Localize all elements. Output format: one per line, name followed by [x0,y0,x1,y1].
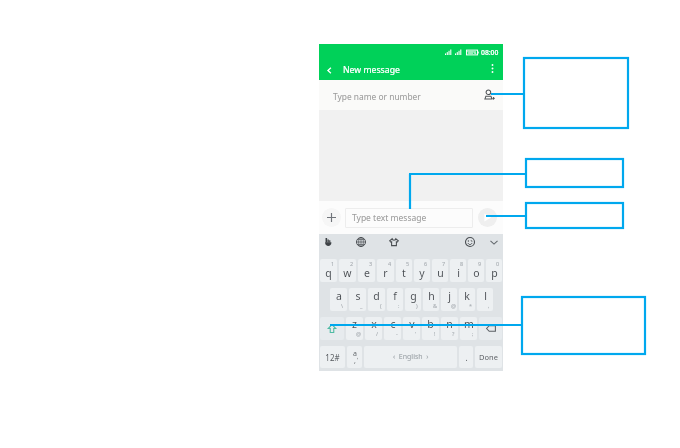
button[interactable]: Symbols [347,346,362,368]
button[interactable]: Back [319,60,339,80]
staticText: ( [380,302,382,309]
button[interactable]: k [459,288,475,311]
staticText: c [390,317,396,331]
staticText: - [396,330,398,337]
button[interactable]: o [468,259,484,282]
button[interactable]: n [441,317,458,340]
staticText: z [352,317,357,331]
staticText: ) [416,302,418,309]
button[interactable]: e [358,259,375,282]
staticText: a [353,349,357,359]
button[interactable]: x [365,317,382,340]
staticText: 4 [388,260,392,267]
button[interactable]: Type text message [345,208,473,228]
button[interactable]: c [384,317,401,340]
button[interactable]: . [459,346,473,368]
staticText: & [433,302,438,309]
staticText: w [343,266,352,280]
button[interactable]: v [403,317,420,340]
staticText: \ [341,302,344,309]
staticText: 0 [496,260,500,267]
staticText: k [464,289,470,303]
staticText: 5 [406,260,410,267]
staticText: a [336,289,342,303]
staticText: o [473,266,480,280]
button[interactable]: Add recipient [479,85,499,105]
button[interactable]: Space [364,346,457,368]
staticText: 9 [478,260,482,267]
button[interactable]: j [441,288,457,311]
staticText: v [409,317,415,331]
button[interactable]: z [346,317,363,340]
staticText: ‹ English › [393,352,429,362]
staticText: e [364,266,370,280]
button[interactable]: p [486,259,502,282]
button[interactable]: w [339,259,356,282]
button[interactable]: r [377,259,394,282]
button[interactable]: h [423,288,439,311]
button[interactable]: q [320,259,337,282]
staticText: . [465,352,468,363]
staticText: ' [415,330,417,337]
staticText: u [437,266,444,280]
staticText: Done [479,352,498,362]
button[interactable]: t [396,259,412,282]
staticText: d [373,289,380,303]
button[interactable]: l [477,288,493,311]
button[interactable]: a [330,288,347,311]
staticText: m [464,317,474,331]
button[interactable]: Handwriting [320,234,336,250]
button[interactable]: f [387,288,403,311]
button[interactable]: Language [353,234,369,250]
button[interactable]: More options [483,60,501,80]
staticText: g [410,289,417,303]
button[interactable]: Send [478,208,497,227]
staticText: Type text message [352,212,427,224]
staticText: x [371,317,377,331]
button[interactable]: Done [475,346,502,368]
staticText: : [398,302,400,309]
staticText: 100% [467,50,477,55]
button[interactable]: s [349,288,366,311]
staticText: 7 [442,260,446,267]
button[interactable]: m [460,317,477,340]
staticText: ? [452,330,455,337]
staticText: 8 [460,260,464,267]
staticText: 1 [331,260,335,267]
button[interactable]: g [405,288,421,311]
staticText: , [488,302,490,309]
button[interactable]: i [450,259,466,282]
button[interactable]: d [368,288,385,311]
staticText: 6 [424,260,428,267]
staticText: 2 [350,260,354,267]
staticText: , [354,356,356,366]
button[interactable]: Add attachment [322,208,341,227]
staticText: 08:00 [481,48,499,57]
button[interactable]: Emoji [462,234,478,250]
staticText: n [446,317,453,331]
staticText: / [376,330,379,337]
staticText: i [457,266,460,280]
staticText: ˌ [357,352,358,360]
staticText: s [355,289,361,303]
button[interactable]: b [422,317,439,340]
staticText: ! [434,330,436,337]
staticText: 12# [325,352,340,363]
staticText: p [491,266,498,280]
button[interactable]: u [432,259,448,282]
staticText: j [448,289,451,303]
staticText: f [393,289,397,303]
staticText: r [383,266,388,280]
staticText: Type name or number [333,91,421,102]
button[interactable]: Backspace [479,317,502,340]
staticText: New message [343,64,400,76]
button[interactable]: y [414,259,430,282]
button[interactable]: Hide keyboard [486,234,502,250]
staticText: q [325,266,332,280]
button[interactable]: 12# [320,346,345,368]
staticText: t [402,266,406,280]
button[interactable]: Stickers [386,234,402,250]
staticText: l [484,289,487,303]
button[interactable]: Shift [320,317,344,340]
staticText: b [427,317,434,331]
